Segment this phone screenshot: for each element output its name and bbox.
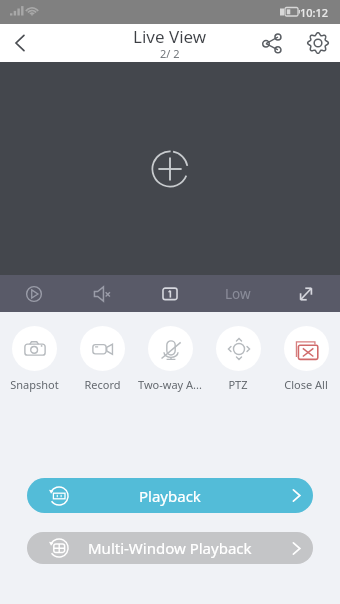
button[interactable]: Two-way A... xyxy=(136,326,204,392)
button[interactable]: Mute xyxy=(68,275,136,312)
button[interactable]: Record xyxy=(68,326,136,392)
button[interactable]: Window count xyxy=(136,275,204,312)
button[interactable]: Play xyxy=(0,275,68,312)
button[interactable]: Settings xyxy=(295,24,340,62)
button[interactable]: Low xyxy=(204,275,272,312)
button[interactable]: Add camera xyxy=(150,149,190,189)
button[interactable]: Fullscreen xyxy=(272,275,340,312)
staticText: Two-way A... xyxy=(138,377,202,392)
staticText: 2/ 2 xyxy=(160,46,180,61)
staticText: Live View xyxy=(133,25,207,48)
staticText: Playback xyxy=(139,486,201,506)
button[interactable]: Snapshot xyxy=(0,326,68,392)
staticText: Low xyxy=(225,285,251,303)
button[interactable]: Close All xyxy=(272,326,340,392)
button[interactable]: Playback xyxy=(27,478,313,513)
staticText: Close All xyxy=(284,377,328,392)
staticText: PTZ xyxy=(228,377,248,392)
button[interactable]: Share xyxy=(250,24,295,62)
staticText: Snapshot xyxy=(10,377,59,392)
staticText: Record xyxy=(84,377,121,392)
button[interactable]: PTZ xyxy=(204,326,272,392)
staticText: 10:12 xyxy=(300,5,329,20)
button[interactable]: Multi-Window Playback xyxy=(27,532,313,564)
staticText: Multi-Window Playback xyxy=(88,538,252,558)
button[interactable]: Back xyxy=(0,24,40,62)
